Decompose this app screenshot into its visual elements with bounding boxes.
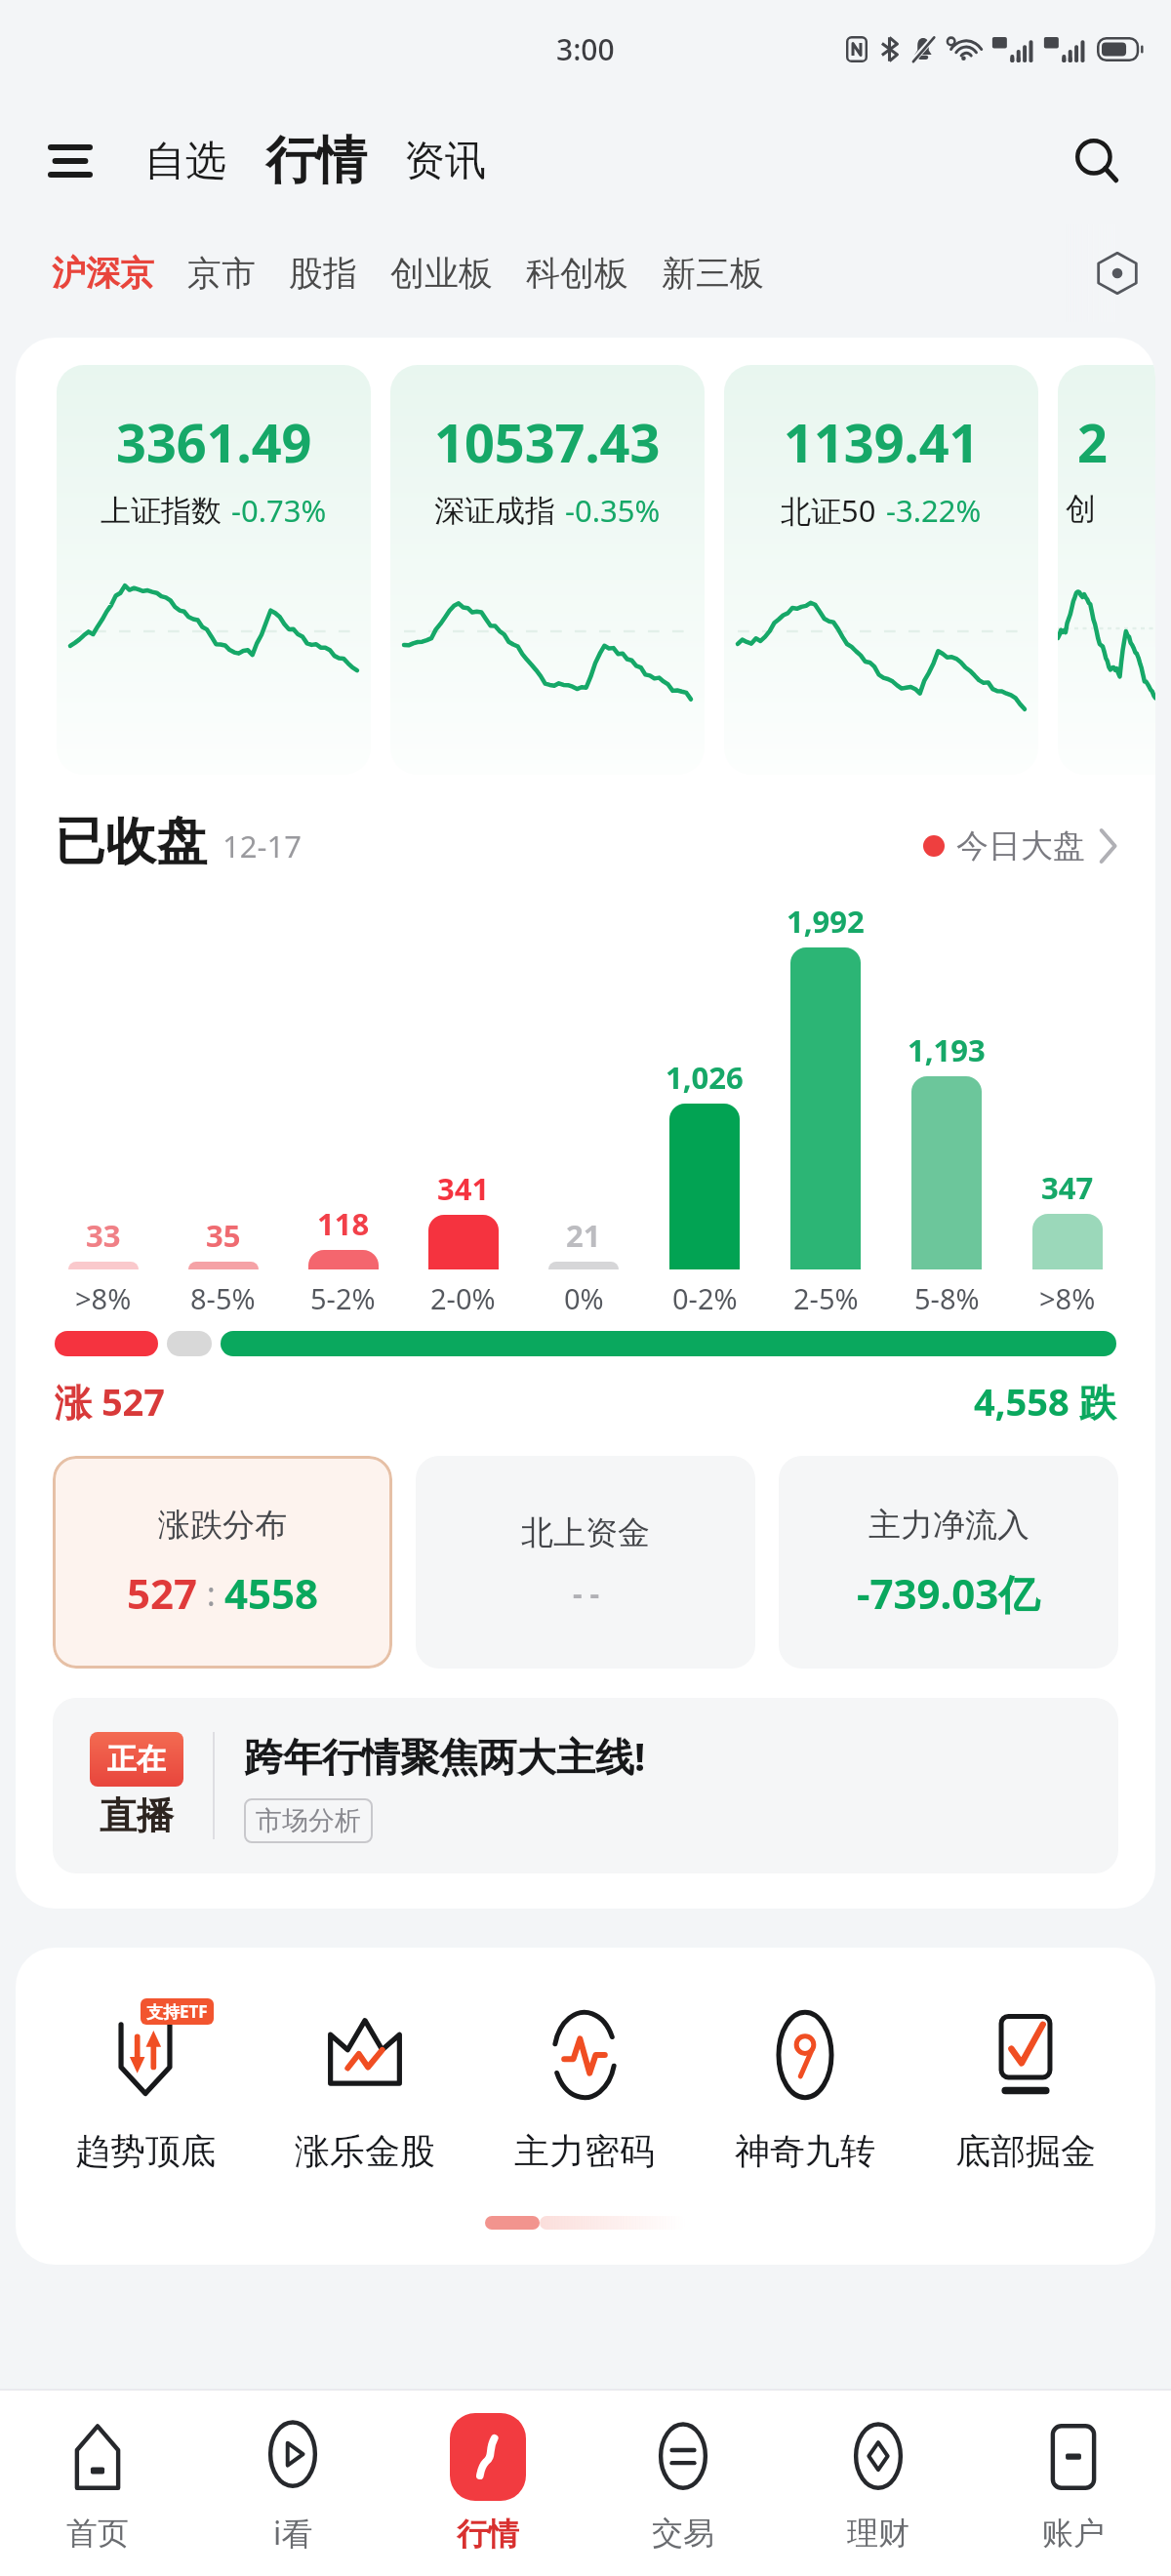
button[interactable]: 涨乐金股 xyxy=(255,1992,474,2173)
staticText: 已收盘 xyxy=(55,810,207,874)
staticText: 支持ETF xyxy=(146,2000,208,2023)
button[interactable]: 科创板 xyxy=(509,238,645,308)
button[interactable]: 正在 xyxy=(53,1698,1118,1873)
staticText: -0.35% xyxy=(565,490,661,531)
staticText: 市场分析 xyxy=(256,1804,361,1837)
button[interactable]: 33 xyxy=(43,1215,163,1317)
button[interactable]: 341 xyxy=(403,1168,523,1317)
button[interactable]: 今日大盘 xyxy=(923,818,1116,874)
staticText: 2 xyxy=(1077,406,1108,478)
staticText: 4558 xyxy=(224,1565,319,1621)
staticText: 跨年行情聚焦两大主线! xyxy=(244,1729,646,1783)
button[interactable]: 账户 xyxy=(976,2391,1171,2576)
staticText: 北上资金 xyxy=(521,1512,650,1553)
button[interactable]: 底部掘金 xyxy=(915,1992,1136,2173)
staticText: 直播 xyxy=(100,1792,174,1839)
button[interactable]: 10537.43 xyxy=(390,365,705,775)
button[interactable]: 行情 xyxy=(390,2391,585,2576)
staticText: 涨跌分布 xyxy=(158,1505,287,1546)
button[interactable]: 1,193 xyxy=(886,1029,1007,1317)
staticText: 主力净流入 xyxy=(868,1505,1030,1546)
staticText: 1139.41 xyxy=(784,406,980,478)
button[interactable]: 行情 xyxy=(260,121,373,201)
staticText: 账户 xyxy=(1042,2514,1105,2553)
staticText: 上证指数 xyxy=(101,492,222,530)
staticText: 4,558 跌 xyxy=(974,1376,1116,1427)
button[interactable]: 347 xyxy=(1007,1167,1128,1317)
button[interactable]: 118 xyxy=(283,1203,403,1317)
button[interactable]: 交易 xyxy=(585,2391,781,2576)
staticText: 京市 xyxy=(187,252,256,295)
button[interactable]: 资讯 xyxy=(398,122,492,201)
button[interactable]: 自选 xyxy=(139,122,232,201)
staticText: 行情 xyxy=(457,2515,519,2554)
staticText: 理财 xyxy=(847,2514,909,2553)
staticText: >8% xyxy=(1039,1279,1096,1317)
staticText: 创 xyxy=(1066,490,1096,528)
button[interactable]: 3361.49 xyxy=(57,365,371,775)
staticText: 5-2% xyxy=(310,1279,376,1317)
button[interactable]: 主力密码 xyxy=(474,1992,695,2173)
staticText: 1,026 xyxy=(666,1057,744,1098)
staticText: 北证50 xyxy=(781,490,876,531)
button[interactable]: 新三板 xyxy=(645,238,781,308)
staticText: >8% xyxy=(75,1279,132,1317)
staticText: 341 xyxy=(437,1168,490,1209)
staticText: 资讯 xyxy=(404,136,486,187)
button[interactable]: 1,992 xyxy=(765,901,886,1317)
staticText: 今日大盘 xyxy=(956,825,1085,866)
button[interactable]: 2 xyxy=(1058,365,1155,775)
button[interactable]: 1,026 xyxy=(644,1057,765,1317)
button[interactable]: i看 xyxy=(195,2391,390,2576)
button[interactable]: Search xyxy=(1058,122,1136,200)
button[interactable]: 涨跌分布 xyxy=(53,1456,392,1669)
button[interactable]: 1139.41 xyxy=(724,365,1038,775)
button[interactable]: 支持ETF xyxy=(35,1992,255,2173)
button[interactable]: 主力净流入 xyxy=(779,1456,1118,1669)
staticText: 527 xyxy=(127,1565,198,1621)
staticText: 1,992 xyxy=(787,901,865,942)
staticText: 首页 xyxy=(66,2514,129,2553)
staticText: : xyxy=(198,1571,224,1616)
button[interactable]: 沪深京 xyxy=(35,238,171,308)
staticText: -0.73% xyxy=(231,490,327,531)
button[interactable]: 首页 xyxy=(0,2391,195,2576)
staticText: 2-0% xyxy=(430,1279,496,1317)
staticText: 科创板 xyxy=(526,252,628,295)
staticText: 趋势顶底 xyxy=(75,2129,216,2173)
staticText: 沪深京 xyxy=(52,252,154,295)
staticText: 涨乐金股 xyxy=(295,2129,435,2173)
staticText: 5-8% xyxy=(914,1279,980,1317)
button[interactable]: More tabs xyxy=(1064,224,1171,322)
button[interactable]: Menu xyxy=(35,126,105,196)
button[interactable]: 神奇九转 xyxy=(695,1992,915,2173)
button[interactable]: 21 xyxy=(523,1215,644,1317)
button[interactable]: 理财 xyxy=(781,2391,976,2576)
staticText: 自选 xyxy=(144,136,226,187)
staticText: 3:00 xyxy=(556,29,615,69)
staticText: 行情 xyxy=(265,129,367,193)
staticText: 涨 527 xyxy=(55,1376,166,1427)
staticText: 0-2% xyxy=(672,1279,738,1317)
staticText: 创业板 xyxy=(390,252,493,295)
button[interactable]: 京市 xyxy=(171,238,272,308)
staticText: 3361.49 xyxy=(116,406,312,478)
staticText: 正在 xyxy=(107,1741,166,1778)
button[interactable]: 创业板 xyxy=(374,238,509,308)
staticText: 主力密码 xyxy=(514,2129,655,2173)
staticText: 10537.43 xyxy=(434,406,661,478)
staticText: - - xyxy=(573,1573,599,1613)
staticText: 底部掘金 xyxy=(955,2129,1096,2173)
button[interactable]: 35 xyxy=(163,1215,283,1317)
staticText: 33 xyxy=(86,1215,121,1256)
staticText: 0% xyxy=(564,1279,604,1317)
button[interactable]: 北上资金 xyxy=(416,1456,755,1669)
staticText: -739.03亿 xyxy=(857,1565,1040,1621)
staticText: 12-17 xyxy=(222,825,302,866)
staticText: 35 xyxy=(206,1215,241,1256)
staticText: 神奇九转 xyxy=(735,2129,875,2173)
staticText: -3.22% xyxy=(886,490,982,531)
staticText: 深证成指 xyxy=(434,492,555,530)
staticText: 118 xyxy=(317,1203,370,1244)
button[interactable]: 股指 xyxy=(272,238,374,308)
